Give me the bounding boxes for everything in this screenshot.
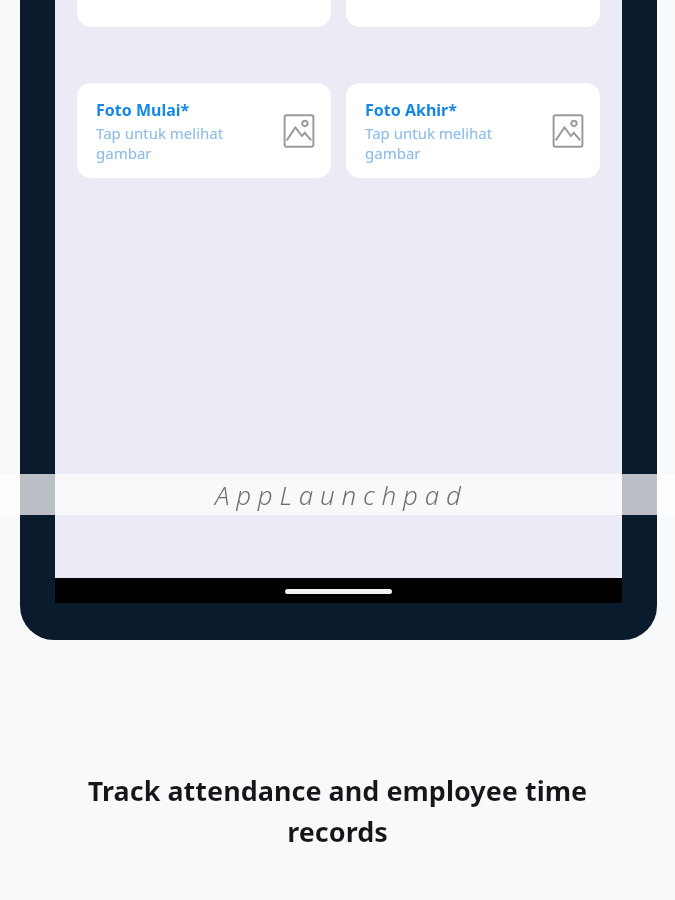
button[interactable]: View image — [281, 113, 317, 149]
staticText: gambar — [365, 143, 421, 163]
staticText: Track attendance and employee time recor… — [48, 772, 627, 850]
button[interactable]: Foto Mulai* — [77, 83, 331, 178]
button[interactable]: View image — [550, 113, 586, 149]
button[interactable]: Foto Akhir* — [346, 83, 600, 178]
staticText: A p p L a u n c h p a d — [215, 477, 461, 512]
staticText: gambar — [96, 143, 152, 163]
staticText: Foto Mulai* — [96, 99, 190, 121]
staticText: Tap untuk melihat — [96, 123, 224, 143]
staticText: Tap untuk melihat — [365, 123, 493, 143]
staticText: Foto Akhir* — [365, 99, 457, 121]
